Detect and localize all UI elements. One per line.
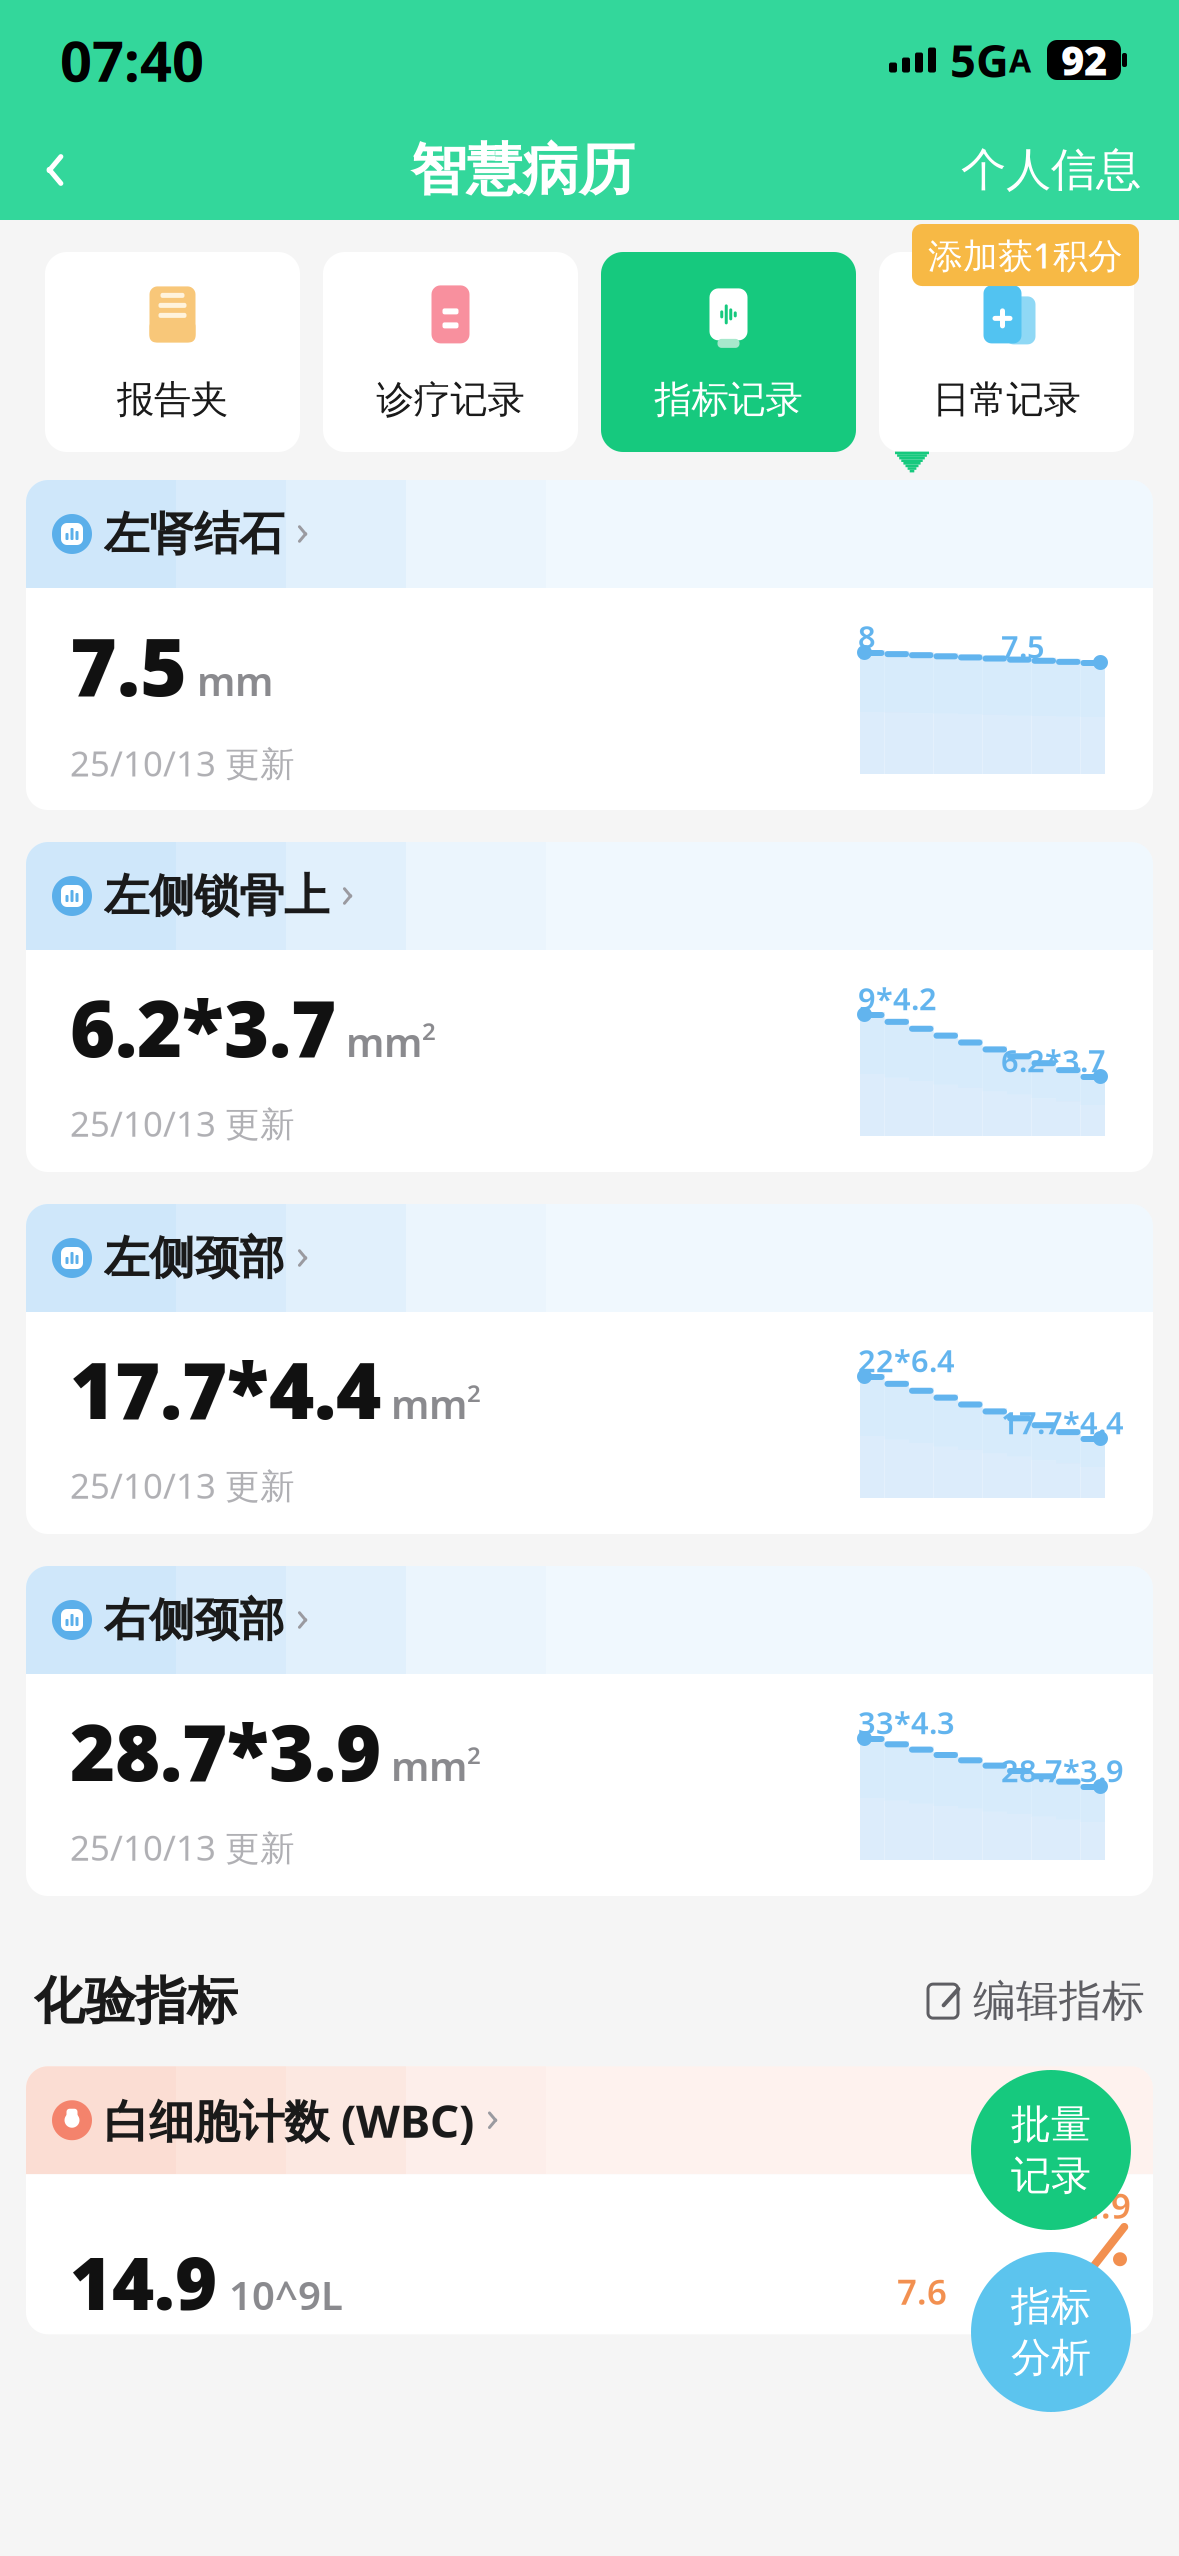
button[interactable]: 个人信息	[935, 124, 1167, 216]
staticText: A	[1009, 39, 1031, 81]
staticText: 批量	[1011, 2100, 1091, 2149]
staticText: 9*4.2	[858, 978, 937, 1019]
staticText: 8	[858, 616, 876, 657]
button[interactable]: 返回	[0, 124, 110, 216]
button[interactable]: 右侧颈部	[26, 1566, 1153, 1896]
button[interactable]: 指标记录	[601, 252, 856, 452]
staticText: mm	[391, 1377, 467, 1430]
button[interactable]: 诊疗记录	[323, 252, 578, 452]
button[interactable]: 日常记录	[879, 252, 1134, 452]
staticText: 28.7*3.9	[1001, 1750, 1124, 1791]
staticText: mm	[346, 1015, 422, 1068]
staticText: 10^9L	[229, 2268, 343, 2321]
button[interactable]: 白细胞计数 (WBC)	[26, 2066, 1153, 2334]
staticText: 5G	[950, 30, 1009, 90]
button[interactable]: 左侧颈部	[26, 1204, 1153, 1534]
staticText: 编辑指标	[973, 1975, 1145, 2027]
staticText: 分析	[1011, 2333, 1091, 2382]
staticText: 日常记录	[932, 377, 1080, 423]
staticText: 个人信息	[961, 142, 1141, 198]
staticText: 7.5	[70, 612, 187, 718]
staticText: 智慧病历	[410, 136, 634, 204]
staticText: 2	[422, 1015, 436, 1047]
staticText: 2	[467, 1377, 481, 1409]
staticText: 25/10/13 更新	[70, 740, 295, 786]
button[interactable]: 左肾结石	[26, 480, 1153, 810]
staticText: 17.7*4.4	[70, 1338, 381, 1440]
button[interactable]: 指标	[971, 2252, 1131, 2412]
staticText: 92	[1061, 33, 1107, 86]
staticText: 6.2*3.7	[1001, 1040, 1106, 1081]
staticText: 指标记录	[654, 377, 802, 423]
staticText: 7.5	[1001, 626, 1045, 667]
staticText: 33*4.3	[858, 1702, 955, 1743]
button[interactable]: 左侧锁骨上	[26, 842, 1153, 1172]
button[interactable]: 批量	[971, 2070, 1131, 2230]
staticText: 28.7*3.9	[70, 1700, 381, 1802]
staticText: 17.7*4.4	[1001, 1402, 1124, 1443]
staticText: 4.7	[987, 2286, 1037, 2332]
staticText: 白细胞计数 (WBC)	[104, 2090, 474, 2150]
staticText: 22*6.4	[858, 1340, 955, 1381]
staticText: 化验指标	[34, 1970, 238, 2032]
staticText: 右侧颈部	[104, 1592, 284, 1648]
staticText: 左侧锁骨上	[104, 868, 329, 924]
staticText: 6.2*3.7	[70, 976, 336, 1078]
staticText: mm	[197, 654, 273, 707]
staticText: 左肾结石	[104, 506, 284, 562]
button[interactable]: 报告夹	[45, 252, 300, 452]
staticText: 7.6	[897, 2268, 947, 2314]
staticText: 诊疗记录	[376, 377, 524, 423]
staticText: 2	[467, 1739, 481, 1771]
staticText: 07:40	[60, 23, 204, 97]
button[interactable]: 编辑指标	[925, 1975, 1145, 2027]
staticText: 14.9	[1061, 2182, 1131, 2228]
staticText: 指标	[1011, 2282, 1091, 2331]
staticText: 14.9	[70, 2234, 217, 2330]
staticText: 左侧颈部	[104, 1230, 284, 1286]
staticText: mm	[391, 1739, 467, 1792]
staticText: 报告夹	[117, 377, 228, 423]
staticText: 添加获1积分	[928, 232, 1123, 278]
staticText: 25/10/13 更新	[70, 1100, 295, 1146]
staticText: 25/10/13 更新	[70, 1824, 295, 1870]
staticText: 25/10/13 更新	[70, 1462, 295, 1508]
staticText: 记录	[1011, 2151, 1091, 2200]
